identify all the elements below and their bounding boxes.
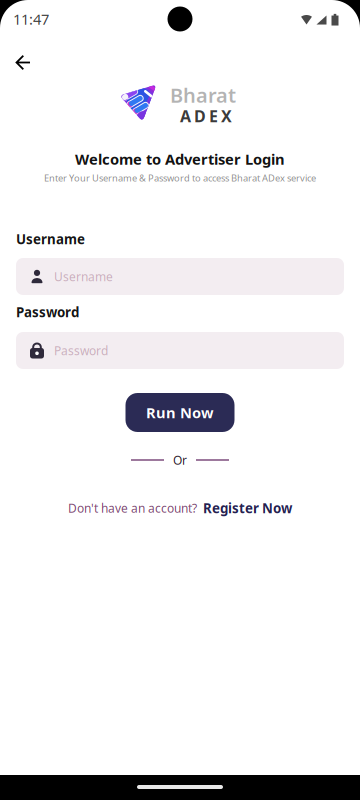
staticText: Register Now [203, 499, 292, 517]
staticText: Username [16, 230, 85, 248]
staticText: Password [54, 342, 108, 358]
staticText: Bharat [170, 82, 236, 108]
staticText: Don't have an account? [68, 500, 197, 516]
button[interactable]: Run Now [125, 393, 234, 432]
staticText: 11:47 [13, 9, 49, 29]
button[interactable]: Username [16, 258, 344, 295]
staticText: Username [54, 268, 113, 284]
staticText: Enter Your Username & Password to access… [44, 172, 316, 184]
staticText: Password [16, 303, 79, 321]
staticText: Or [173, 452, 187, 468]
staticText: ADEX [180, 105, 232, 127]
button[interactable]: Password [16, 332, 344, 369]
staticText: Welcome to Advertiser Login [75, 149, 285, 169]
button[interactable]: Back [6, 45, 40, 79]
staticText: Run Now [146, 403, 214, 422]
button[interactable]: Register Now [203, 499, 292, 517]
